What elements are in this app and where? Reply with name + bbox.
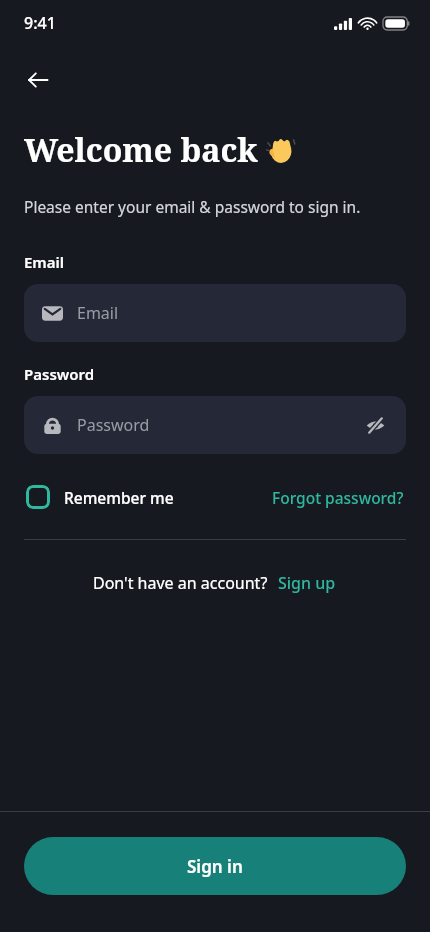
staticText: Password	[77, 414, 358, 436]
button[interactable]: Sign up	[276, 570, 338, 596]
button[interactable]: Show password	[358, 408, 392, 442]
button[interactable]: Back	[16, 58, 60, 102]
button[interactable]: Remember me	[24, 481, 176, 513]
button[interactable]: Email	[24, 284, 406, 342]
staticText: Please enter your email & password to si…	[24, 196, 361, 217]
staticText: Email	[77, 302, 119, 324]
staticText: Don't have an account?	[93, 572, 268, 594]
staticText: Sign in	[187, 855, 243, 878]
staticText: Password	[24, 364, 95, 384]
staticText: 9:41	[24, 12, 56, 34]
button[interactable]: Password	[24, 396, 406, 454]
staticText: Email	[24, 252, 65, 272]
staticText: Remember me	[64, 487, 174, 508]
button[interactable]: Sign in	[24, 837, 406, 895]
button[interactable]: Forgot password?	[270, 483, 406, 512]
staticText: Welcome back	[24, 128, 258, 172]
